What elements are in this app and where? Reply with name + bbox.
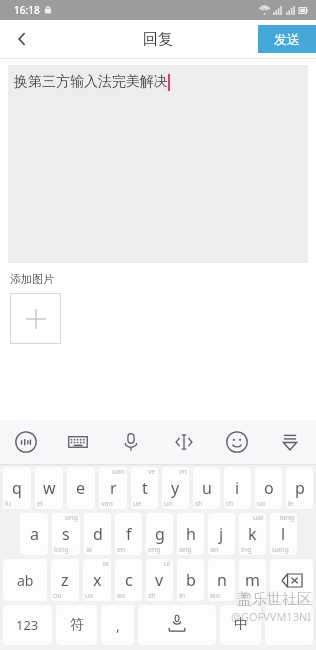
button[interactable]: e <box>67 467 95 509</box>
button[interactable]: b <box>177 559 204 601</box>
staticText: ong <box>65 513 78 523</box>
staticText: ia <box>103 559 109 569</box>
staticText: u <box>202 477 212 499</box>
button[interactable]: 123 <box>3 605 52 645</box>
button[interactable]: d <box>84 513 111 555</box>
button[interactable]: uan <box>99 467 127 509</box>
staticText: en <box>117 545 126 555</box>
staticText: uai <box>253 513 264 523</box>
staticText: ve <box>148 467 156 477</box>
button[interactable]: 发送 <box>258 25 316 53</box>
button[interactable]: iang <box>270 513 297 555</box>
button[interactable]: 符 <box>56 605 97 645</box>
button[interactable]: Keyboard layout <box>52 420 104 464</box>
staticText: z <box>61 569 69 591</box>
staticText: ai <box>86 545 92 555</box>
button[interactable]: Add image <box>10 293 61 344</box>
staticText: 盖乐世社区 <box>237 590 312 609</box>
button[interactable]: Emoji <box>210 420 263 464</box>
staticText: iong <box>54 545 69 555</box>
button[interactable]: Edit cursor <box>157 420 210 464</box>
button[interactable]: j <box>208 513 235 555</box>
button[interactable]: a <box>20 513 48 555</box>
staticText: @GOFVVM13NI <box>231 609 312 624</box>
button[interactable]: 中 <box>220 605 261 645</box>
button[interactable]: uai <box>239 513 266 555</box>
staticText: 符 <box>70 616 84 634</box>
staticText: 123 <box>16 616 39 634</box>
button[interactable]: f <box>115 513 142 555</box>
staticText: g <box>155 523 165 545</box>
button[interactable]: u <box>193 467 220 509</box>
button[interactable]: n <box>208 559 235 601</box>
button[interactable]: c <box>115 559 142 601</box>
button[interactable]: h <box>177 513 204 555</box>
staticText: iao <box>210 591 220 601</box>
button[interactable]: vn <box>162 467 189 509</box>
staticText: r <box>110 477 117 499</box>
button[interactable]: , <box>101 605 134 645</box>
staticText: l <box>281 523 286 545</box>
staticText: d <box>93 523 103 545</box>
staticText: h <box>186 523 196 545</box>
staticText: 发送 <box>274 31 300 47</box>
staticText: iang <box>280 513 295 523</box>
button[interactable]: Back <box>0 20 44 58</box>
button[interactable]: 换第三方输入法完美解决 <box>8 65 308 263</box>
staticText: eng <box>148 545 161 555</box>
staticText: ian <box>241 591 252 601</box>
staticText: ue <box>133 499 142 509</box>
button[interactable]: z <box>51 559 79 601</box>
staticText: un <box>164 499 173 509</box>
staticText: 16:18 <box>14 3 40 17</box>
button[interactable]: ia <box>83 559 111 601</box>
staticText: w <box>43 477 56 499</box>
button[interactable]: q <box>3 467 31 509</box>
button[interactable]: Voice input <box>104 420 157 464</box>
staticText: ab <box>17 571 34 590</box>
staticText: , <box>116 616 120 635</box>
staticText: v <box>155 569 164 591</box>
button[interactable]: o <box>255 467 282 509</box>
staticText: ou <box>53 591 62 601</box>
staticText: q <box>12 477 22 499</box>
button[interactable]: i <box>224 467 251 509</box>
staticText: in <box>179 591 186 601</box>
button[interactable]: ab <box>3 559 47 601</box>
button[interactable]: w <box>35 467 63 509</box>
staticText: iu <box>5 499 12 509</box>
staticText: f <box>126 523 132 545</box>
button[interactable]: Input method <box>0 420 52 464</box>
staticText: m <box>245 569 260 591</box>
staticText: ang <box>179 545 192 555</box>
button[interactable]: Space <box>138 605 216 645</box>
button[interactable]: g <box>146 513 173 555</box>
staticText: ao <box>117 591 126 601</box>
staticText: o <box>264 477 274 499</box>
staticText: uan <box>112 467 125 477</box>
staticText: 换第三方输入法完美解决 <box>14 73 168 91</box>
button[interactable]: Backspace <box>270 559 313 601</box>
staticText: ua <box>85 591 94 601</box>
staticText: 中 <box>234 616 248 634</box>
staticText: vn <box>179 467 187 477</box>
staticText: j <box>219 523 224 545</box>
staticText: y <box>171 477 180 499</box>
button[interactable]: ui <box>146 559 173 601</box>
staticText: van <box>101 499 113 509</box>
staticText: s <box>62 523 70 545</box>
button[interactable]: Enter <box>265 605 313 645</box>
staticText: t <box>142 477 148 499</box>
staticText: ch <box>226 499 234 509</box>
button[interactable]: Hide keyboard <box>263 420 316 464</box>
button[interactable]: p <box>286 467 313 509</box>
button[interactable]: ong <box>52 513 80 555</box>
button[interactable]: m <box>239 559 266 601</box>
staticText: n <box>217 569 227 591</box>
staticText: a <box>30 523 39 545</box>
staticText: e <box>76 477 86 499</box>
staticText: uang <box>272 545 289 555</box>
staticText: 回复 <box>143 30 173 49</box>
staticText: b <box>186 569 196 591</box>
button[interactable]: ve <box>131 467 158 509</box>
